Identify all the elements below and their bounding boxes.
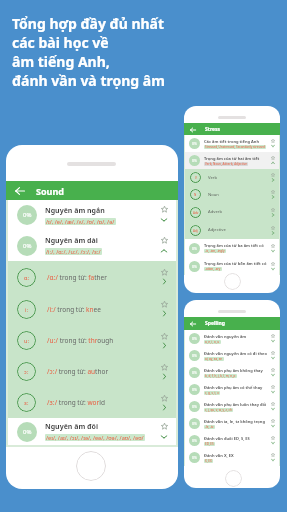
other: Expand bbox=[271, 424, 275, 428]
other: Open bbox=[161, 278, 168, 285]
staticText: /uː/ trong từ: through bbox=[47, 336, 156, 345]
button[interactable]: 0% bbox=[185, 415, 279, 432]
button[interactable]: 0% bbox=[8, 200, 176, 230]
staticText: X, EX bbox=[205, 459, 212, 463]
other: Favorite bbox=[271, 453, 275, 457]
other: Open bbox=[271, 231, 275, 235]
staticText: V bbox=[195, 176, 197, 180]
staticText: Stress bbox=[205, 126, 221, 133]
staticText: Adj bbox=[193, 229, 198, 233]
staticText: Sound bbox=[36, 185, 64, 197]
button[interactable]: 0% bbox=[185, 257, 279, 275]
other: Open bbox=[161, 342, 168, 349]
staticText: uː bbox=[24, 337, 30, 344]
other: Expand bbox=[271, 458, 275, 462]
staticText: Trọng âm của từ ba âm tiết có hậu tố bbox=[204, 243, 268, 248]
other: Favorite bbox=[271, 368, 275, 372]
staticText: Đánh vần phụ âm không thay đổi bbox=[204, 368, 268, 373]
staticText: Đánh vần phụ âm luôn thay đổi bbox=[204, 402, 267, 407]
staticText: Stressed, Unstressed, Secondarily stress… bbox=[205, 145, 265, 149]
staticText: 0% bbox=[23, 428, 32, 436]
other: Favorite bbox=[161, 364, 168, 371]
button[interactable]: 0% bbox=[185, 381, 279, 398]
staticText: 0% bbox=[23, 211, 32, 219]
staticText: ai, ay, ea, ee bbox=[205, 357, 223, 361]
staticText: Đánh vần nguyên âm có đi theo sau bbox=[204, 351, 268, 356]
staticText: Đánh vần phụ âm có thể thay đổi bbox=[204, 385, 268, 390]
button[interactable]: Back bbox=[184, 317, 280, 330]
staticText: 0% bbox=[192, 264, 197, 269]
button[interactable]: 0% bbox=[8, 418, 176, 445]
button[interactable]: Adj bbox=[185, 221, 279, 239]
other: Favorite bbox=[271, 436, 275, 440]
other: Expand bbox=[271, 441, 275, 445]
staticText: ɔː bbox=[24, 368, 29, 375]
staticText: Đánh vần X, EX bbox=[204, 453, 234, 458]
staticText: ɑː bbox=[24, 274, 30, 281]
other: Favorite bbox=[271, 419, 275, 423]
staticText: 0% bbox=[23, 242, 32, 250]
button[interactable]: 0% bbox=[185, 449, 279, 466]
staticText: c, g, s, t, x bbox=[205, 391, 219, 395]
other: Favorite bbox=[271, 156, 275, 160]
other: Favorite bbox=[271, 190, 275, 194]
button[interactable]: 0% bbox=[185, 432, 279, 449]
staticText: Adverb bbox=[208, 209, 269, 215]
other: Home bbox=[224, 273, 241, 290]
button[interactable]: 0% bbox=[185, 135, 279, 152]
other: Favorite bbox=[161, 237, 168, 244]
button[interactable]: Back bbox=[6, 181, 178, 200]
staticText: Adjective bbox=[208, 227, 269, 233]
staticText: 0% bbox=[192, 336, 197, 341]
staticText: 0% bbox=[192, 353, 197, 358]
staticText: 0% bbox=[192, 404, 197, 409]
button[interactable]: 0% bbox=[185, 398, 279, 415]
button[interactable]: iː bbox=[8, 293, 176, 325]
staticText: 0% bbox=[192, 421, 197, 426]
staticText: ɜː bbox=[24, 399, 29, 406]
staticText: -ic, -ion, -ingly bbox=[205, 249, 225, 253]
button[interactable]: uː bbox=[8, 325, 176, 356]
button[interactable]: V bbox=[185, 169, 279, 186]
staticText: các bài học về bbox=[12, 33, 109, 52]
staticText: 0% bbox=[192, 141, 197, 146]
other: Back bbox=[190, 127, 196, 133]
button[interactable]: 0% bbox=[8, 230, 176, 261]
staticText: 0% bbox=[192, 455, 197, 460]
other: Favorite bbox=[271, 351, 275, 355]
staticText: Verb, Noun, Adverb, Adjective bbox=[205, 162, 247, 166]
other: Favorite bbox=[271, 139, 275, 143]
staticText: Nguyên âm đôi bbox=[45, 422, 99, 432]
other: Expand bbox=[271, 356, 275, 360]
button[interactable]: Adv bbox=[185, 203, 279, 221]
staticText: Verb bbox=[208, 175, 269, 181]
other: Back bbox=[190, 321, 196, 327]
button[interactable]: Back bbox=[184, 123, 280, 136]
staticText: Tổng hợp đầy đủ nhất bbox=[12, 14, 165, 33]
staticText: 0% bbox=[192, 158, 197, 163]
staticText: b, d, f, h, j, k, l, m, n, p bbox=[205, 374, 236, 378]
other: Expand bbox=[271, 373, 275, 377]
button[interactable]: 0% bbox=[185, 239, 279, 257]
button[interactable]: 0% bbox=[185, 330, 279, 347]
button[interactable]: ɔː bbox=[8, 356, 176, 387]
other: Expand bbox=[271, 407, 275, 411]
other: Favorite bbox=[271, 402, 275, 406]
other: Collapse bbox=[160, 247, 168, 255]
staticText: 0% bbox=[192, 370, 197, 375]
button[interactable]: ɑː bbox=[8, 261, 176, 293]
other: Open bbox=[161, 310, 168, 317]
other: Open bbox=[271, 178, 275, 182]
button[interactable]: 0% bbox=[185, 364, 279, 381]
other: Favorite bbox=[271, 226, 275, 230]
other: Favorite bbox=[271, 334, 275, 338]
other: Favorite bbox=[161, 423, 168, 430]
button[interactable]: 0% bbox=[185, 347, 279, 364]
staticText: Nguyên âm ngắn bbox=[45, 206, 105, 216]
other: Open bbox=[161, 373, 168, 380]
button[interactable]: 0% bbox=[185, 152, 279, 169]
other: Home bbox=[76, 451, 106, 481]
staticText: /iː/ trong từ: knee bbox=[47, 305, 156, 314]
button[interactable]: N bbox=[185, 186, 279, 203]
button[interactable]: ɜː bbox=[8, 387, 176, 418]
